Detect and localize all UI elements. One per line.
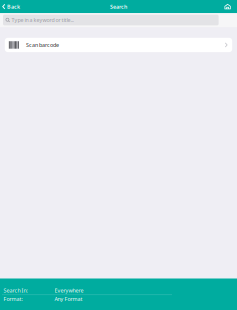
staticText: Any Format — [54, 295, 82, 303]
button[interactable]: Search In: — [0, 286, 237, 294]
button[interactable]: Back — [0, 0, 23, 13]
button[interactable]: Format: — [0, 295, 237, 303]
button[interactable]: Type in a keyword or title... — [3, 15, 219, 25]
button[interactable]: Home — [220, 1, 237, 12]
staticText: Scan barcode — [26, 41, 59, 48]
staticText: Format: — [4, 295, 23, 303]
staticText: Everywhere — [54, 287, 83, 294]
staticText: Search In: — [4, 287, 28, 294]
button[interactable]: Scan barcode — [5, 38, 232, 52]
staticText: Search — [110, 3, 127, 10]
staticText: Type in a keyword or title... — [12, 16, 74, 24]
staticText: Back — [7, 3, 20, 10]
